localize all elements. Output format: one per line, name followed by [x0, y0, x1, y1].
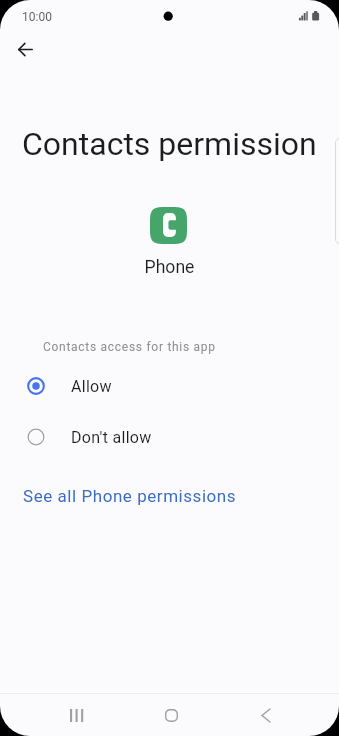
staticText: Phone [0, 257, 339, 278]
button[interactable]: Don't allow [0, 413, 339, 462]
staticText: Contacts access for this app [43, 340, 216, 354]
staticText: Don't allow [71, 428, 152, 447]
staticText: Allow [71, 377, 112, 396]
staticText: 10:00 [22, 10, 52, 24]
staticText: See all Phone permissions [23, 486, 237, 506]
staticText: Contacts permission [22, 125, 317, 163]
button[interactable]: Navigate up [6, 30, 44, 68]
button[interactable]: Home [147, 694, 195, 736]
button[interactable]: Recent apps [52, 694, 100, 736]
button[interactable]: Back [242, 694, 290, 736]
button[interactable]: See all Phone permissions [0, 478, 339, 514]
button[interactable]: Allow [0, 362, 339, 411]
